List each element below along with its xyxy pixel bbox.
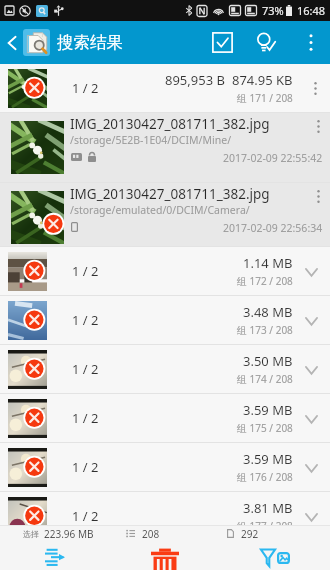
staticText: 1 / 2 (72, 79, 99, 97)
button[interactable]: 1 / 2 (0, 443, 330, 491)
staticText: 3.59 MB (243, 401, 293, 419)
staticText: 874.95 KB (232, 71, 293, 89)
staticText: /storage/5E2B-1E04/DCIM/Mine/ (70, 133, 232, 147)
staticText: 1.14 MB (243, 254, 293, 272)
button[interactable]: Expand (300, 492, 330, 540)
staticText: 223.96 MB (44, 527, 94, 541)
button[interactable]: 1 / 2 (0, 247, 330, 295)
staticText: 2017-02-09 22:56:34 (223, 221, 323, 235)
staticText: 1 / 2 (72, 409, 99, 427)
staticText: 组 176 / 208 (237, 470, 293, 484)
staticText: IMG_20130427_081711_382.jpg (70, 185, 270, 203)
button[interactable]: Expand (300, 394, 330, 442)
staticText: 搜索结果 (57, 32, 123, 53)
staticText: 1 / 2 (72, 360, 99, 378)
button[interactable]: 1 / 2 (0, 345, 330, 393)
button[interactable]: IMG_20130427_081711_382.jpg (0, 113, 330, 182)
staticText: 3.81 MB (243, 499, 293, 517)
staticText: 1 / 2 (72, 507, 99, 525)
staticText: 组 172 / 208 (237, 274, 293, 288)
staticText: 组 171 / 208 (237, 91, 293, 105)
staticText: 1 / 2 (72, 311, 99, 329)
button[interactable]: 1 / 2 (0, 394, 330, 442)
staticText: 2017-02-09 22:55:42 (223, 151, 323, 165)
button[interactable]: 1 / 2 (0, 296, 330, 344)
staticText: 208 (142, 527, 160, 541)
staticText: 组 175 / 208 (237, 421, 293, 435)
staticText: 组 173 / 208 (237, 323, 293, 337)
staticText: 292 (241, 527, 259, 541)
staticText: 16:48 (297, 3, 326, 18)
staticText: 组 177 / 208 (237, 519, 293, 533)
button[interactable]: More options (298, 21, 324, 64)
staticText: 组 174 / 208 (237, 372, 293, 386)
staticText: 3.48 MB (243, 303, 293, 321)
button[interactable]: Filter images (220, 542, 330, 570)
button[interactable]: Sort (0, 542, 110, 570)
staticText: 3.59 MB (243, 450, 293, 468)
button[interactable]: Delete (110, 542, 220, 570)
staticText: IMG_20130427_081711_382.jpg (70, 115, 270, 133)
button[interactable]: 1 / 2 (0, 64, 330, 112)
button[interactable]: Expand (300, 296, 330, 344)
staticText: 73% (262, 3, 284, 18)
button[interactable]: Select all (201, 21, 244, 64)
staticText: 1 / 2 (72, 458, 99, 476)
button[interactable]: IMG_20130427_081711_382.jpg (0, 183, 330, 246)
button[interactable]: Expand (300, 443, 330, 491)
staticText: /storage/emulated/0/DCIM/Camera/ (70, 203, 250, 217)
staticText: 1 / 2 (72, 262, 99, 280)
button[interactable]: Item options (306, 113, 330, 139)
button[interactable]: Back (2, 21, 22, 64)
button[interactable]: Smart suggestion (244, 21, 287, 64)
button[interactable]: Item options (306, 183, 330, 209)
button[interactable]: Expand (300, 247, 330, 295)
staticText: 选择 (23, 529, 39, 539)
button[interactable]: Item options (300, 64, 330, 112)
button[interactable]: 1 / 2 (0, 492, 330, 540)
button[interactable]: Expand (300, 345, 330, 393)
staticText: 3.50 MB (243, 352, 293, 370)
staticText: 895,953 B (165, 71, 225, 89)
